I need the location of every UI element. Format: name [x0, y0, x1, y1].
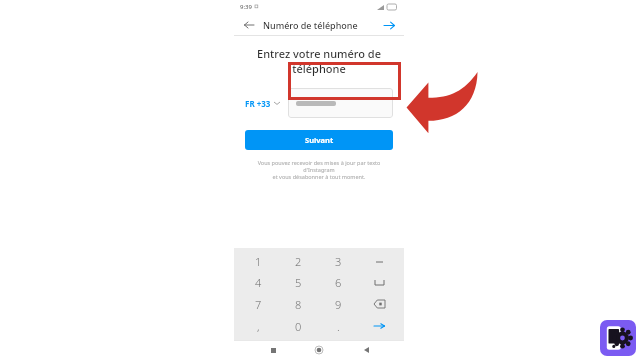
button[interactable]: Tiret: [359, 251, 400, 272]
button[interactable]: Suivant: [245, 130, 393, 150]
staticText: 0: [295, 319, 302, 334]
button[interactable]: 8: [278, 293, 318, 315]
button[interactable]: 1: [238, 251, 278, 272]
button[interactable]: 0: [278, 315, 318, 337]
button[interactable]: 4: [238, 272, 278, 293]
button[interactable]: Logo: [600, 320, 636, 356]
staticText: 1: [255, 254, 262, 269]
staticText: 4: [255, 275, 262, 290]
staticText: ,: [257, 319, 260, 334]
staticText: 5: [295, 275, 302, 290]
staticText: FR +33: [245, 98, 271, 109]
button[interactable]: 6: [318, 272, 359, 293]
staticText: 2: [295, 254, 302, 269]
staticText: 6: [335, 275, 342, 290]
button[interactable]: 3: [318, 251, 359, 272]
button[interactable]: Espace: [359, 272, 400, 293]
button[interactable]: Supprimer: [359, 293, 400, 315]
button[interactable]: Retour: [358, 342, 374, 358]
button[interactable]: ,: [238, 315, 278, 337]
button[interactable]: Applications récentes: [265, 342, 281, 358]
staticText: 7: [255, 297, 262, 312]
button[interactable]: FR +33: [245, 88, 280, 118]
button[interactable]: Accueil: [311, 342, 327, 358]
staticText: Suivant: [305, 135, 334, 145]
button[interactable]: 7: [238, 293, 278, 315]
button[interactable]: Retour: [242, 18, 256, 32]
staticText: .: [337, 319, 340, 334]
button[interactable]: Entrée: [359, 315, 400, 337]
staticText: Entrez votre numéro de téléphone: [234, 46, 404, 76]
staticText: Numéro de téléphone: [263, 19, 358, 31]
staticText: Vous pouvez recevoir des mises à jour pa…: [246, 159, 392, 180]
button[interactable]: [288, 88, 393, 118]
staticText: 8: [295, 297, 302, 312]
button[interactable]: 5: [278, 272, 318, 293]
button[interactable]: 9: [318, 293, 359, 315]
staticText: 9: [335, 297, 342, 312]
staticText: 9:39: [240, 3, 252, 11]
button[interactable]: 2: [278, 251, 318, 272]
button[interactable]: Suivant: [382, 18, 396, 32]
staticText: 3: [335, 254, 342, 269]
